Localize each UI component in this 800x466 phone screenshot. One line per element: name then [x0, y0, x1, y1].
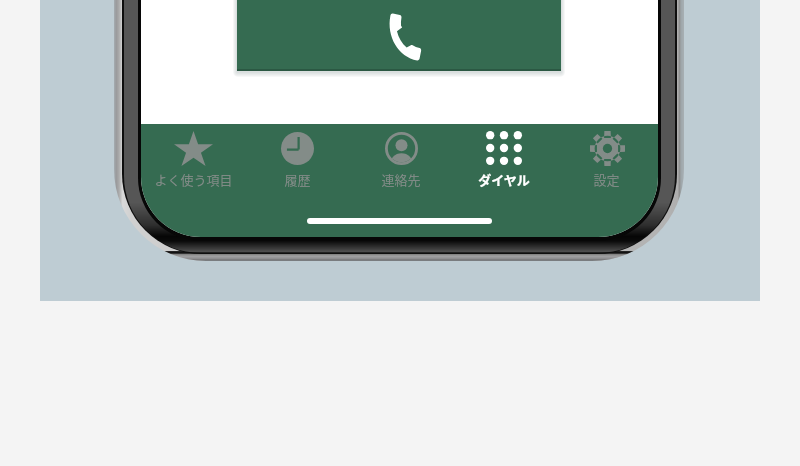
button[interactable]: 履歴 — [245, 124, 349, 237]
staticText: よく使う項目 — [154, 170, 233, 189]
button[interactable]: よく使う項目 — [141, 124, 245, 237]
button[interactable]: Call — [237, 0, 561, 71]
button[interactable]: 設定 — [555, 124, 658, 237]
staticText: 連絡先 — [381, 170, 421, 189]
button[interactable]: ダイヤル — [452, 124, 555, 237]
button[interactable]: 連絡先 — [349, 124, 452, 237]
staticText: 設定 — [593, 170, 620, 189]
staticText: ダイヤル — [478, 170, 530, 189]
staticText: 履歴 — [284, 170, 311, 189]
